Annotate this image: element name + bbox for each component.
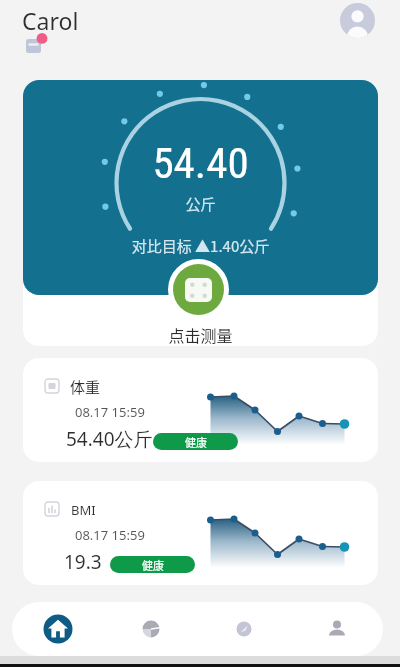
staticText: 54.40 (23, 138, 378, 188)
staticText: Carol (22, 5, 79, 36)
button[interactable]: 体重 (23, 358, 378, 462)
staticText: BMI (71, 501, 96, 519)
staticText: 公斤 (23, 193, 378, 215)
staticText: 54.40公斤 (66, 426, 153, 452)
staticText: 健康 (185, 434, 207, 450)
button[interactable]: Devices (197, 602, 290, 656)
button[interactable]: Home (12, 602, 104, 656)
button[interactable]: Measure weight (168, 259, 229, 320)
staticText: 健康 (142, 557, 164, 573)
button[interactable]: Profile (290, 602, 383, 656)
button[interactable]: Messages (24, 33, 56, 55)
button[interactable]: BMI (23, 481, 378, 585)
staticText: 08.17 15:59 (75, 403, 145, 421)
staticText: 08.17 15:59 (75, 526, 145, 544)
staticText: 体重 (70, 376, 101, 398)
staticText: 点击测量 (23, 323, 378, 346)
staticText: 19.3 (64, 549, 102, 575)
button[interactable]: Statistics (104, 602, 197, 656)
button[interactable]: Profile (340, 3, 375, 38)
staticText: 对比目标 ▲1.40公斤 (23, 235, 378, 257)
